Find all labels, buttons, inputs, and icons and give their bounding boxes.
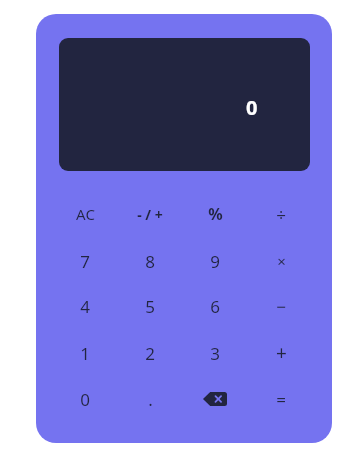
staticText: + <box>276 340 287 366</box>
staticText: 9 <box>210 250 220 273</box>
staticText: 7 <box>80 250 90 273</box>
staticText: − <box>276 295 286 318</box>
staticText: AC <box>76 204 95 224</box>
button[interactable]: 1 <box>54 333 116 373</box>
button[interactable]: 0 <box>54 379 116 419</box>
button[interactable]: − <box>250 286 312 326</box>
button[interactable]: = <box>250 379 312 419</box>
button[interactable]: ÷ <box>250 194 312 234</box>
button[interactable]: + <box>250 333 312 373</box>
button[interactable]: 5 <box>119 286 181 326</box>
staticText: 2 <box>145 342 155 365</box>
button[interactable]: . <box>119 379 181 419</box>
staticText: 3 <box>210 342 220 365</box>
staticText: . <box>148 388 153 411</box>
button[interactable]: 3 <box>184 333 246 373</box>
staticText: 6 <box>210 295 220 318</box>
button[interactable]: 7 <box>54 241 116 281</box>
staticText: - / + <box>137 205 163 224</box>
button[interactable]: Backspace <box>184 379 246 419</box>
button[interactable]: % <box>184 194 246 234</box>
staticText: = <box>276 388 286 411</box>
button[interactable]: 6 <box>184 286 246 326</box>
button[interactable]: 8 <box>119 241 181 281</box>
staticText: 1 <box>80 342 90 365</box>
staticText: % <box>208 203 223 225</box>
button[interactable]: AC <box>54 194 116 234</box>
button[interactable]: - / + <box>119 194 181 234</box>
staticText: × <box>277 251 286 271</box>
button[interactable]: 9 <box>184 241 246 281</box>
staticText: 0 <box>80 388 90 411</box>
staticText: 0 <box>246 94 258 121</box>
button[interactable]: × <box>250 241 312 281</box>
button[interactable]: 2 <box>119 333 181 373</box>
staticText: 4 <box>80 295 90 318</box>
staticText: ÷ <box>276 203 286 226</box>
staticText: 8 <box>145 250 155 273</box>
staticText: 5 <box>145 295 155 318</box>
button[interactable]: 4 <box>54 286 116 326</box>
